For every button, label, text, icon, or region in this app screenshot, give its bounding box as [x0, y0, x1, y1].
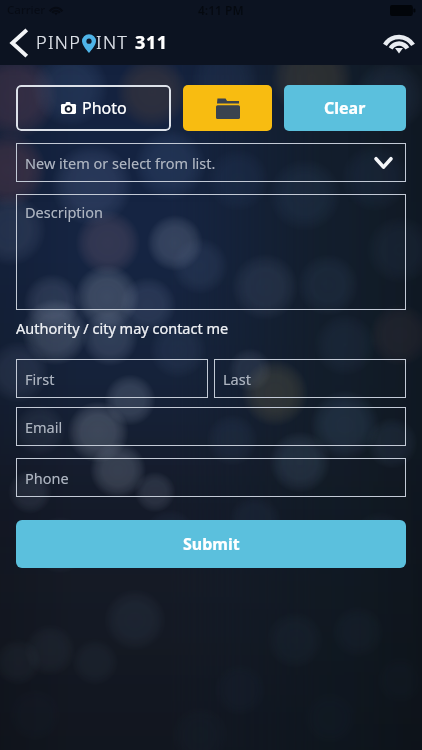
staticText: 311 [135, 30, 168, 55]
button[interactable]: Email [16, 407, 406, 446]
button[interactable]: Back [0, 20, 36, 65]
staticText: 4:11 PM [198, 2, 244, 18]
button[interactable]: Last [214, 359, 406, 398]
staticText: Description [25, 202, 104, 222]
button[interactable]: Clear [284, 85, 406, 131]
staticText: Phone [25, 468, 69, 488]
staticText: Last [223, 369, 251, 389]
staticText: New item or select from list. [25, 153, 216, 173]
button[interactable]: Phone [16, 458, 406, 497]
staticText: PINP [36, 30, 82, 55]
staticText: INT [96, 30, 129, 55]
button[interactable]: Description [16, 194, 406, 310]
staticText: Email [25, 417, 63, 437]
button[interactable]: Choose from library [183, 85, 272, 131]
staticText: Photo [82, 97, 127, 119]
button[interactable]: Submit [16, 520, 406, 568]
staticText: Authority / city may contact me [16, 318, 229, 338]
staticText: Clear [324, 97, 366, 119]
button[interactable]: Photo [16, 85, 171, 131]
staticText: Carrier [7, 2, 46, 18]
staticText: Submit [183, 533, 240, 555]
staticText: First [25, 369, 55, 389]
button[interactable]: New item or select from list. [16, 143, 406, 182]
button[interactable]: Wi-Fi status [378, 20, 420, 65]
button[interactable]: First [16, 359, 208, 398]
